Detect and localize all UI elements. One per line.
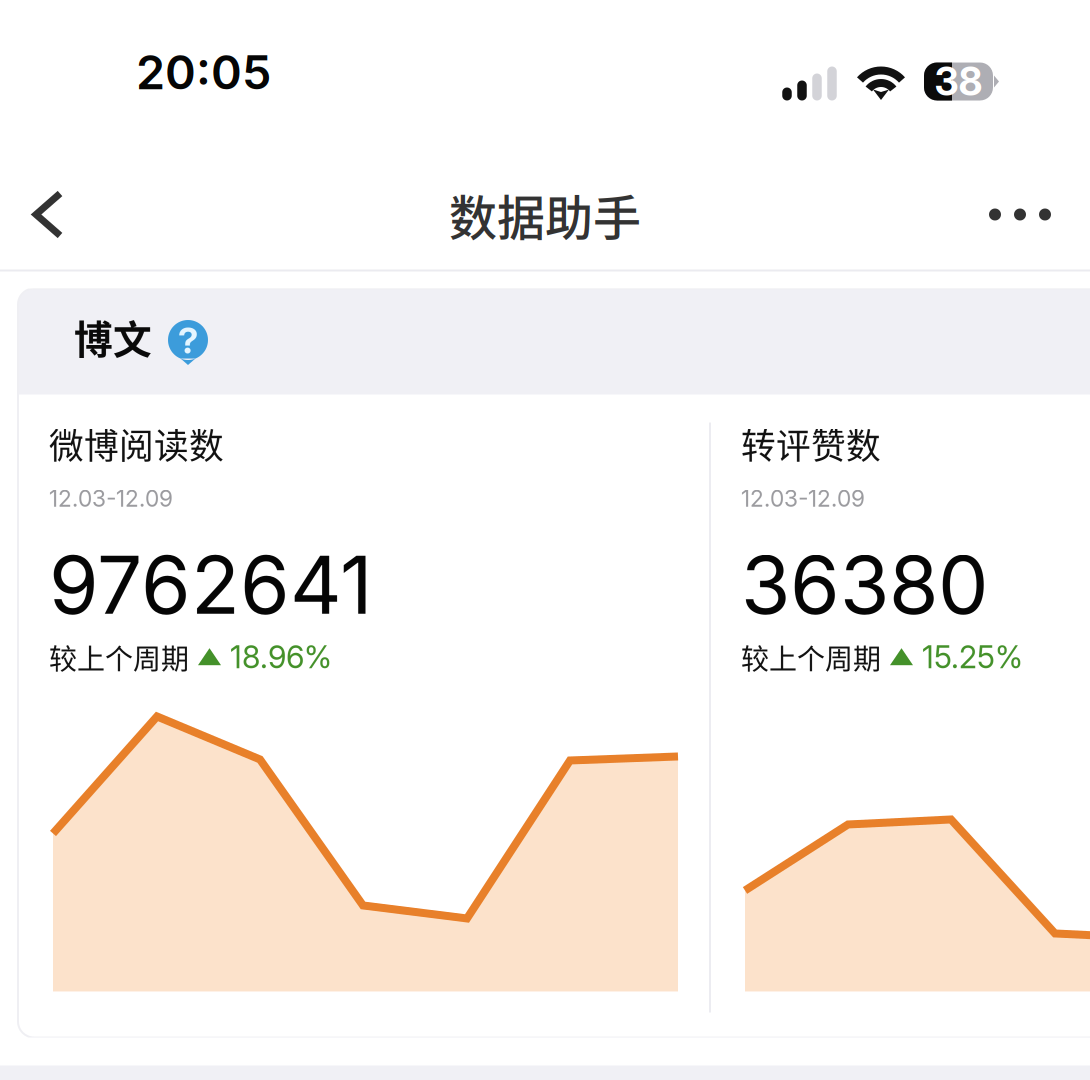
staticText: 数据助手	[449, 180, 641, 249]
button[interactable]: More options	[950, 159, 1090, 269]
staticText: 15.25%	[922, 639, 1023, 676]
staticText: 较上个周期	[49, 637, 189, 677]
button[interactable]: Back	[0, 159, 96, 269]
staticText: 36380	[741, 536, 988, 633]
staticText: 12.03-12.09	[741, 485, 865, 512]
staticText: 18.96%	[230, 639, 332, 676]
staticText: ?	[178, 319, 198, 362]
staticText: 较上个周期	[741, 637, 881, 677]
button[interactable]: 博文	[18, 288, 1090, 394]
staticText: 博文	[74, 309, 152, 365]
staticText: 20:05	[136, 44, 271, 100]
staticText: 38	[934, 58, 982, 105]
staticText: 9762641	[49, 536, 373, 633]
staticText: 12.03-12.09	[49, 485, 173, 512]
staticText: 微博阅读数	[49, 418, 224, 469]
staticText: 转评赞数	[741, 418, 881, 469]
